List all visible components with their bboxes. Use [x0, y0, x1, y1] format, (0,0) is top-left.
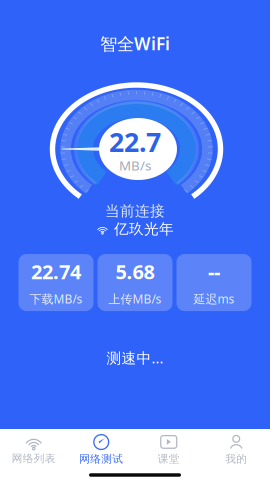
staticText: 网络列表: [12, 452, 56, 465]
staticText: 亿玖光年: [114, 220, 174, 238]
button[interactable]: 5.68: [97, 254, 172, 311]
staticText: 我的: [225, 452, 247, 465]
staticText: MB/s: [119, 156, 151, 174]
staticText: 当前连接: [105, 202, 165, 220]
button[interactable]: 网络测试: [67, 429, 135, 470]
staticText: 课堂: [158, 452, 180, 465]
button[interactable]: --: [176, 254, 251, 311]
staticText: 22.7: [109, 124, 161, 159]
staticText: 上传MB/s: [108, 291, 161, 307]
staticText: 测速中...: [106, 348, 163, 367]
staticText: --: [208, 258, 220, 285]
staticText: 5.68: [115, 258, 154, 285]
staticText: 下载MB/s: [29, 291, 82, 307]
staticText: 延迟ms: [193, 291, 234, 307]
staticText: 智全WiFi: [100, 32, 170, 55]
staticText: 22.74: [31, 258, 81, 285]
button[interactable]: 22.74: [18, 254, 93, 311]
button[interactable]: 我的: [202, 429, 270, 470]
staticText: 网络测试: [79, 452, 123, 465]
button[interactable]: 课堂: [135, 429, 202, 470]
button[interactable]: 网络列表: [0, 429, 67, 470]
